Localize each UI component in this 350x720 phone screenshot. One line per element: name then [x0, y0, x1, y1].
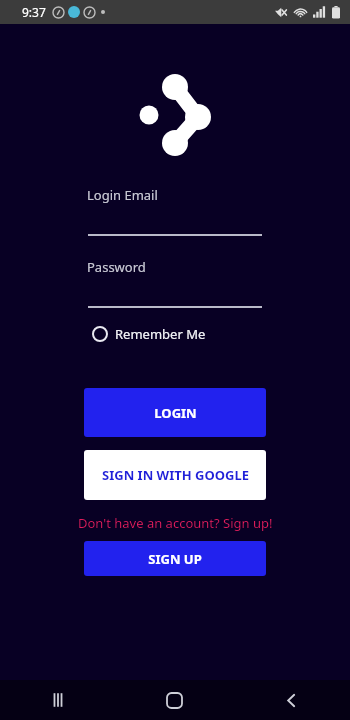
staticText: SIGN UP	[148, 550, 202, 568]
button[interactable]: Recents	[0, 680, 116, 720]
staticText: SIGN IN WITH GOOGLE	[102, 466, 249, 484]
button[interactable]: Home	[116, 680, 233, 720]
button[interactable]: Remember Me	[92, 325, 206, 343]
button[interactable]: Back	[233, 680, 350, 720]
staticText: Password	[87, 258, 146, 276]
button[interactable]: SIGN IN WITH GOOGLE	[84, 450, 266, 500]
staticText: LOGIN	[154, 404, 197, 422]
button[interactable]: LOGIN	[84, 388, 266, 437]
button[interactable]: SIGN UP	[84, 541, 266, 576]
staticText: Don't have an account? Sign up!	[78, 514, 273, 532]
staticText: 9:37	[22, 4, 46, 20]
staticText: Login Email	[87, 186, 158, 204]
staticText: Remember Me	[115, 325, 206, 343]
button[interactable]: Don't have an account? Sign up!	[0, 514, 350, 532]
